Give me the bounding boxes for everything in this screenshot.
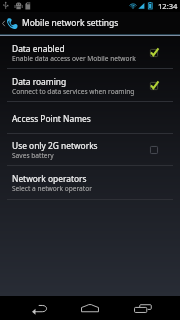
staticText: 12:34: [158, 1, 178, 11]
staticText: Select a network operator: [12, 184, 92, 193]
button[interactable]: Data enabled: [0, 36, 180, 69]
button[interactable]: Network operators: [0, 166, 180, 199]
button[interactable]: Back: [23, 296, 56, 320]
button[interactable]: Data roaming: [0, 69, 180, 102]
staticText: Network operators: [12, 173, 87, 184]
staticText: Connect to data services when roaming: [12, 87, 135, 96]
staticText: Data enabled: [12, 43, 65, 54]
staticText: Access Point Names: [12, 113, 91, 124]
button[interactable]: Recent apps: [126, 296, 159, 320]
button[interactable]: Access Point Names: [0, 102, 180, 134]
button[interactable]: Home: [73, 296, 106, 320]
staticText: Use only 2G networks: [12, 140, 98, 151]
button[interactable]: Navigate up: [0, 12, 22, 34]
staticText: Enable data access over Mobile network: [12, 54, 136, 63]
button[interactable]: Use only 2G networks: [0, 134, 180, 166]
staticText: Data roaming: [12, 76, 67, 87]
staticText: Mobile network settings: [22, 17, 119, 29]
staticText: Saves battery: [12, 151, 54, 160]
